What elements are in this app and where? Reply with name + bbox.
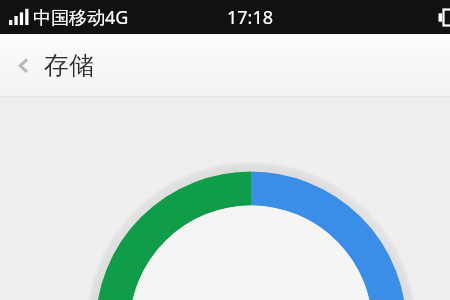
staticText: 中国移动4G [33, 5, 129, 30]
button[interactable]: Back [0, 34, 44, 96]
staticText: 17:18 [227, 5, 274, 30]
staticText: 存储 [44, 50, 94, 81]
